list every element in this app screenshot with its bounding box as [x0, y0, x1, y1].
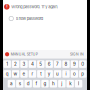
button[interactable]: 6 [45, 60, 53, 68]
staticText: d [27, 81, 30, 86]
staticText: 9 [73, 61, 76, 67]
staticText: a [10, 81, 13, 86]
button[interactable]: j [58, 80, 65, 87]
staticText: e [22, 71, 25, 77]
staticText: 1 [6, 61, 8, 67]
staticText: MANUAL SETUP [11, 52, 38, 56]
button[interactable]: p [79, 70, 86, 78]
staticText: j [61, 81, 62, 86]
button[interactable]: 1 [3, 60, 11, 68]
staticText: f [36, 81, 38, 86]
staticText: SIGN IN [70, 52, 84, 56]
button[interactable]: u [54, 70, 61, 78]
button[interactable]: h [50, 80, 57, 87]
staticText: 2 [14, 61, 17, 67]
button[interactable]: l [75, 80, 82, 87]
button[interactable]: 8 [62, 60, 70, 68]
staticText: t [40, 71, 41, 77]
button[interactable]: 4 [29, 60, 36, 68]
staticText: 5 [39, 61, 42, 67]
staticText: q [6, 71, 9, 77]
button[interactable]: k [66, 80, 74, 87]
staticText: 8 [64, 61, 67, 67]
button[interactable]: f [33, 80, 40, 87]
button[interactable]: y [45, 70, 53, 78]
button[interactable]: 2 [12, 60, 19, 68]
button[interactable]: 3 [20, 60, 28, 68]
button[interactable]: e [20, 70, 28, 78]
staticText: Show password [16, 16, 43, 21]
button[interactable]: 0 [79, 60, 86, 68]
button[interactable]: d [24, 80, 32, 87]
button[interactable]: q [3, 70, 11, 78]
staticText: 4 [31, 61, 34, 67]
button[interactable]: 7 [54, 60, 61, 68]
staticText: s [19, 81, 21, 86]
staticText: w [14, 71, 18, 77]
staticText: ! [6, 4, 7, 9]
button[interactable]: i [62, 70, 70, 78]
button[interactable]: w [12, 70, 19, 78]
staticText: g [43, 81, 46, 86]
button[interactable]: g [41, 80, 49, 87]
button[interactable]: o [71, 70, 78, 78]
staticText: r [31, 71, 33, 77]
staticText: 7 [56, 61, 59, 67]
staticText: 0 [81, 61, 84, 67]
staticText: y [48, 71, 51, 77]
staticText: u [56, 71, 59, 77]
staticText: 6 [48, 61, 51, 67]
staticText: 3 [22, 61, 25, 67]
staticText: k [69, 81, 71, 86]
button[interactable]: r [29, 70, 36, 78]
button[interactable]: 5 [37, 60, 44, 68]
staticText: Wrong password. Try again. [11, 4, 58, 9]
button[interactable]: t [37, 70, 44, 78]
staticText: o [73, 71, 76, 77]
button[interactable]: s [16, 80, 23, 87]
button[interactable]: 9 [71, 60, 78, 68]
button[interactable]: a [8, 80, 15, 87]
staticText: h [52, 81, 55, 86]
button[interactable]: SIGN IN [70, 52, 90, 56]
button[interactable]: Show password [0, 16, 90, 21]
button[interactable]: MANUAL SETUP [0, 52, 38, 56]
staticText: l [78, 81, 79, 86]
staticText: p [81, 71, 84, 77]
